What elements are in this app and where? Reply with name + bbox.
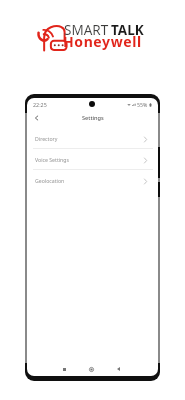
button[interactable]: Home	[86, 364, 96, 374]
staticText: 22:25	[33, 101, 47, 108]
button[interactable]: Voice Settings	[27, 149, 158, 169]
staticText: Settings	[82, 114, 104, 122]
staticText: SMART	[64, 21, 109, 39]
staticText: Geolocation	[35, 177, 65, 184]
button[interactable]: Directory	[27, 128, 158, 148]
staticText: 55%	[137, 101, 148, 108]
staticText: Honeywell	[63, 32, 142, 51]
staticText: Voice Settings	[35, 156, 69, 163]
button[interactable]: Recent apps	[59, 364, 69, 374]
button[interactable]: Geolocation	[27, 170, 158, 190]
button[interactable]: Back	[113, 364, 123, 374]
staticText: TALK	[111, 21, 144, 39]
button[interactable]: Back	[30, 112, 42, 124]
staticText: Directory	[35, 135, 58, 142]
